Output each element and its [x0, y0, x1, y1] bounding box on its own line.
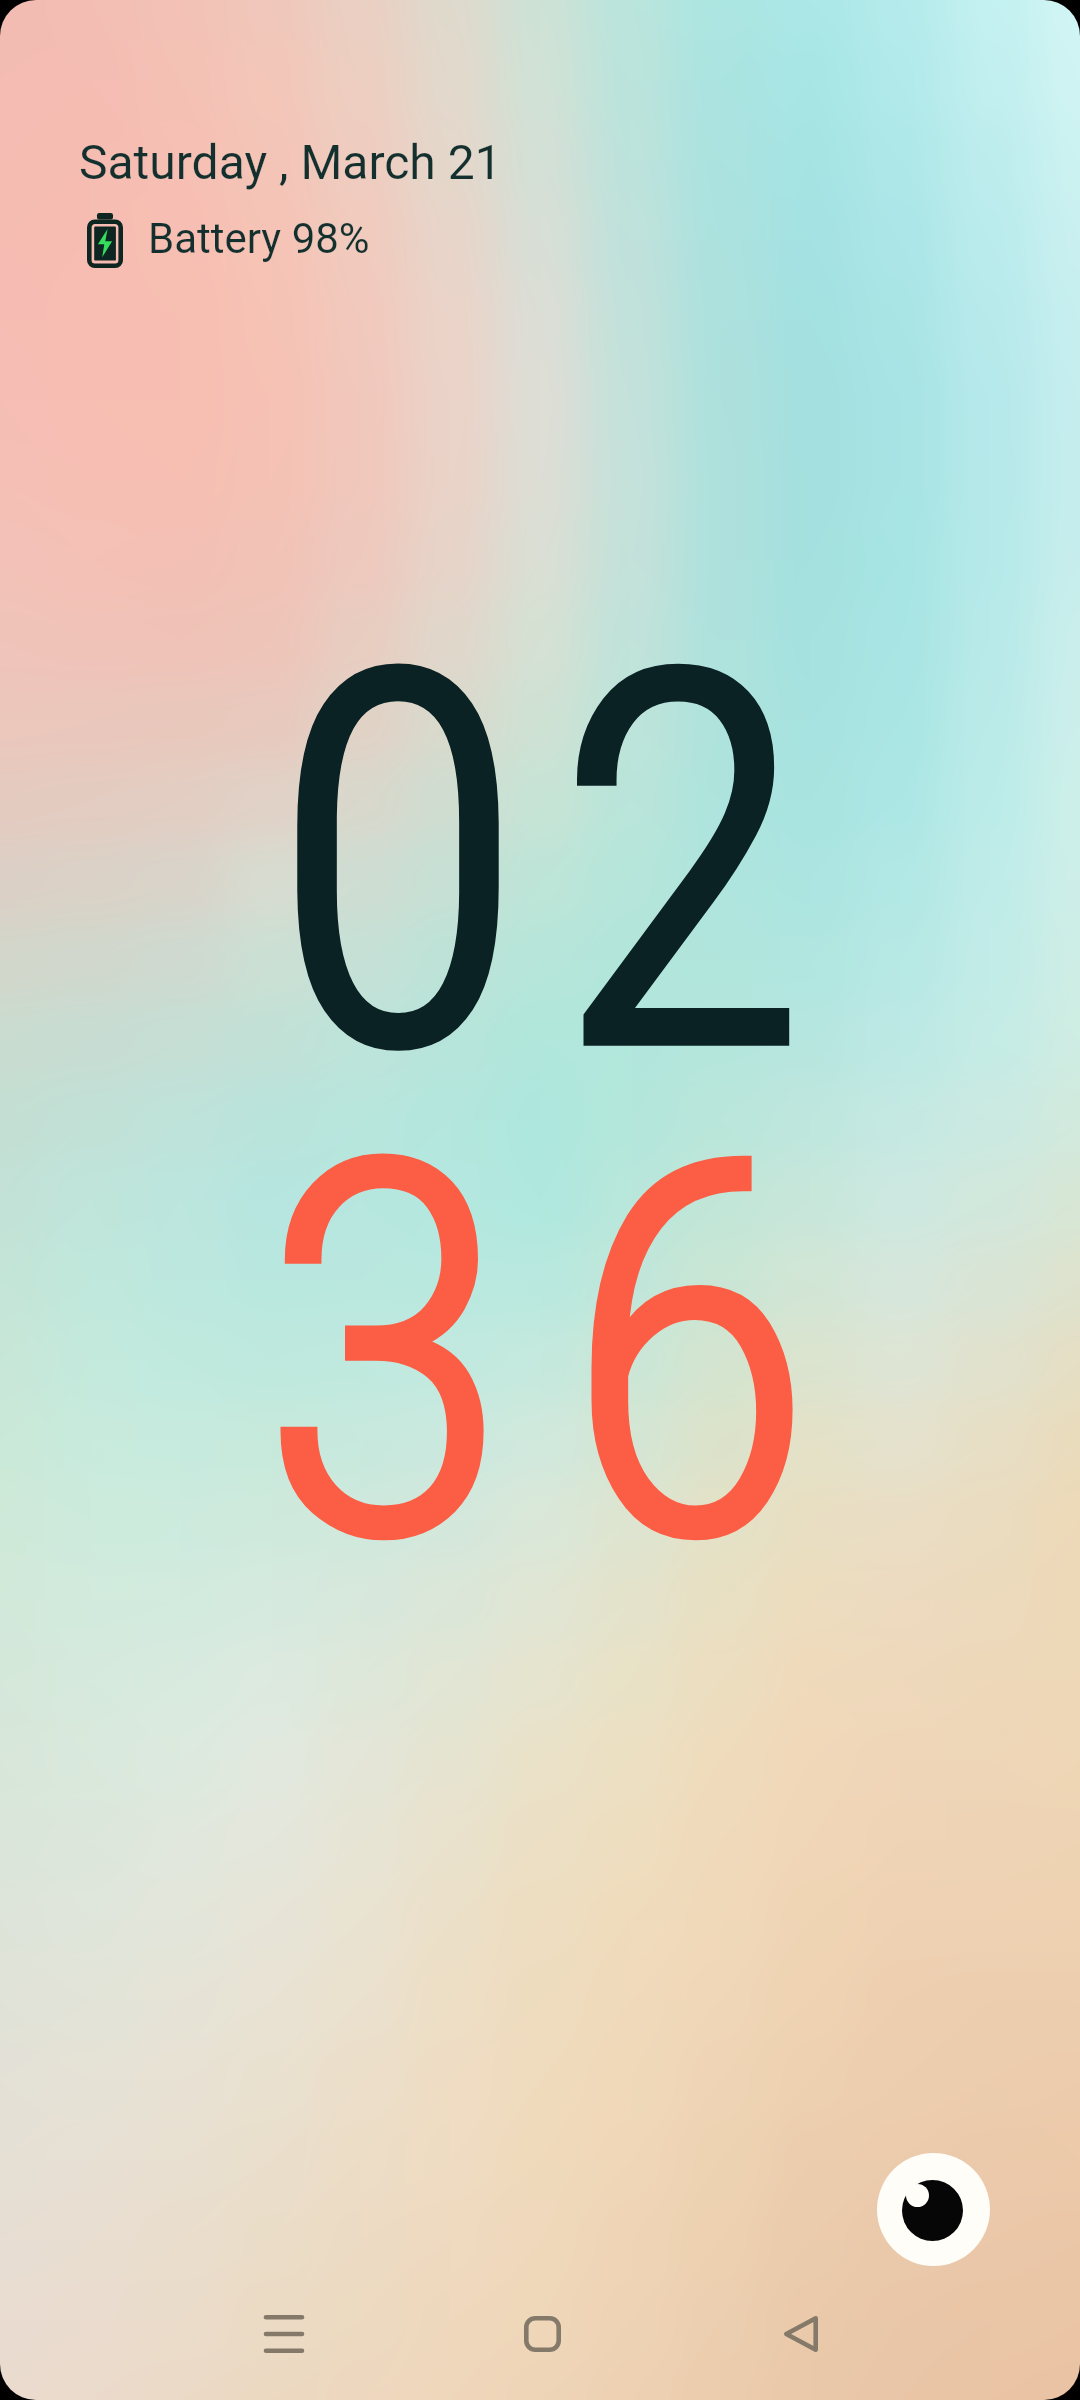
staticText: Battery 98% [148, 214, 370, 263]
button[interactable]: Recent apps [224, 2274, 344, 2394]
button[interactable]: Back [740, 2274, 860, 2394]
button[interactable]: Unlock with face [877, 2153, 990, 2266]
button[interactable]: Home [482, 2274, 602, 2394]
staticText: Saturday , March 21 [79, 134, 502, 190]
